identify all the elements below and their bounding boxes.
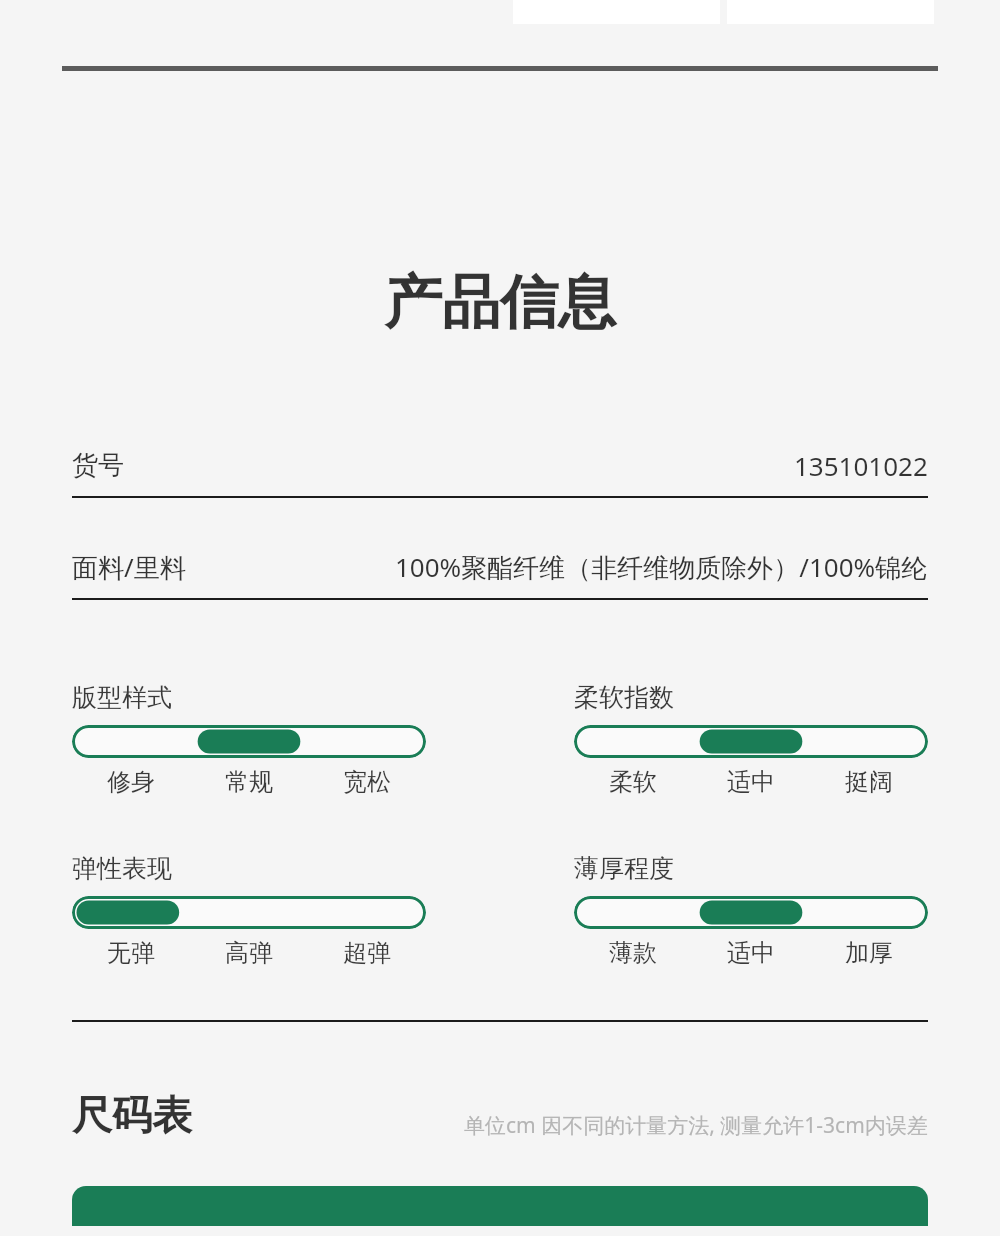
staticText: 常规	[225, 767, 273, 797]
staticText: 适中	[727, 938, 775, 968]
staticText: 高弹	[225, 938, 273, 968]
staticText: 面料/里料	[72, 549, 186, 585]
staticText: 尺码表	[72, 1090, 192, 1140]
staticText: 适中	[727, 767, 775, 797]
button[interactable]	[72, 896, 426, 929]
button[interactable]: 货号	[72, 434, 928, 498]
staticText: 柔软指数	[574, 682, 674, 713]
button[interactable]: 面料/里料	[72, 536, 928, 600]
staticText: 135101022	[794, 448, 928, 483]
staticText: 单位cm 因不同的计量方法, 测量允许1-3cm内误差	[464, 1111, 928, 1140]
staticText: 产品信息	[384, 266, 616, 339]
staticText: 无弹	[107, 938, 155, 968]
staticText: 薄款	[609, 938, 657, 968]
button[interactable]	[574, 896, 928, 929]
staticText: 薄厚程度	[574, 853, 674, 884]
staticText: 货号	[72, 449, 124, 482]
staticText: 100%聚酯纤维（非纤维物质除外）/100%锦纶	[395, 549, 928, 585]
staticText: 版型样式	[72, 682, 172, 713]
staticText: 弹性表现	[72, 853, 172, 884]
staticText: 超弹	[343, 938, 391, 968]
button[interactable]	[72, 725, 426, 758]
staticText: 宽松	[343, 767, 391, 797]
staticText: 柔软	[609, 767, 657, 797]
staticText: 修身	[107, 767, 155, 797]
staticText: 加厚	[845, 938, 893, 968]
staticText: 挺阔	[845, 767, 893, 797]
button[interactable]: 尺码表表头	[72, 1186, 928, 1226]
button[interactable]	[574, 725, 928, 758]
